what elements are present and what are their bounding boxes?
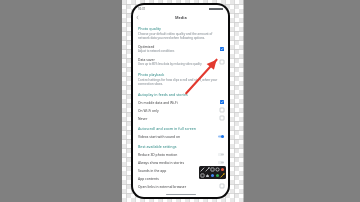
button[interactable]: Data saver <box>133 55 228 68</box>
button[interactable]: Markup tool 5 <box>205 173 210 178</box>
button[interactable]: Markup tool 4 <box>220 167 225 172</box>
staticText: Photo quality <box>138 26 161 31</box>
button[interactable]: Always show media in stories <box>133 158 228 166</box>
staticText: On Wi-Fi only <box>138 108 159 112</box>
staticText: Always show media in stories <box>138 160 185 164</box>
staticText: Media <box>175 15 187 20</box>
staticText: Reduce 3D photo motion <box>138 152 178 156</box>
staticText: Photo playback <box>138 72 165 77</box>
button[interactable]: Markup tool 0 <box>200 167 205 172</box>
button[interactable]: Open links in external browser <box>133 182 228 190</box>
staticText: Autoplay in feeds and stories <box>138 92 188 97</box>
staticText: Autoscroll and zoom in full screen <box>138 126 197 131</box>
staticText: Adjust to network conditions <box>138 49 175 53</box>
button[interactable]: Markup tool 4 <box>210 173 215 178</box>
staticText: Never <box>138 116 148 120</box>
staticText: Open links in external browser <box>138 184 187 188</box>
staticText: Choose your default video quality and th… <box>138 32 220 40</box>
staticText: Best available settings <box>138 144 177 149</box>
button[interactable]: Markup tool 3 <box>215 167 220 172</box>
button[interactable]: Markup tool 2 <box>210 167 215 172</box>
button[interactable]: Markup tool 2 <box>200 173 205 178</box>
button[interactable]: Markup tool 1 <box>205 167 210 172</box>
staticText: 10:31 <box>138 7 146 11</box>
button[interactable]: Markup tool 4 <box>215 173 220 178</box>
button[interactable]: Reduce 3D photo motion <box>133 150 228 158</box>
button[interactable]: App contents <box>133 174 228 182</box>
button[interactable]: On mobile data and Wi-Fi <box>133 98 228 106</box>
staticText: Data saver <box>138 57 155 61</box>
button[interactable]: On Wi-Fi only <box>133 106 228 114</box>
staticText: On mobile data and Wi-Fi <box>138 100 178 104</box>
button[interactable]: Sounds in the app <box>133 166 228 174</box>
button[interactable]: Never <box>133 114 228 122</box>
staticText: Uses up to 80% less data by reducing vid… <box>138 62 202 66</box>
staticText: Sounds in the app <box>138 168 167 172</box>
button[interactable]: Back <box>133 13 142 22</box>
button[interactable]: Markup tool 1 <box>220 173 225 178</box>
button[interactable]: Optimised <box>133 42 228 55</box>
staticText: Videos start with sound on <box>138 134 181 138</box>
staticText: Optimised <box>138 44 155 48</box>
button[interactable]: Videos start with sound on <box>133 132 228 140</box>
staticText: App contents <box>138 176 159 180</box>
staticText: Control settings for how clips scroll an… <box>138 78 220 86</box>
